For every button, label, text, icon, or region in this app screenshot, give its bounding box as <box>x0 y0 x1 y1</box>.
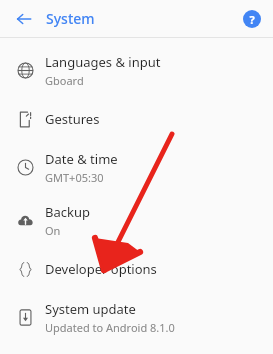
staticText: GMT+05:30 <box>45 170 104 185</box>
button[interactable]: Languages & input <box>0 44 273 97</box>
staticText: Date & time <box>45 150 118 168</box>
staticText: On <box>45 223 61 238</box>
staticText: ? <box>249 12 255 27</box>
button[interactable]: Help <box>239 6 265 32</box>
button[interactable]: Developer options <box>0 247 273 291</box>
staticText: System update <box>45 300 136 318</box>
button[interactable]: Backup <box>0 194 273 247</box>
button[interactable]: Gestures <box>0 97 273 141</box>
button[interactable]: Date & time <box>0 141 273 194</box>
staticText: Languages & input <box>45 53 161 71</box>
staticText: Backup <box>45 203 90 221</box>
staticText: System <box>46 9 95 28</box>
button[interactable]: System update <box>0 291 273 344</box>
staticText: Updated to Android 8.1.0 <box>45 320 175 335</box>
staticText: Developer options <box>45 260 157 278</box>
staticText: Gestures <box>45 110 100 128</box>
button[interactable]: Back <box>10 5 38 33</box>
staticText: Gboard <box>45 73 84 88</box>
